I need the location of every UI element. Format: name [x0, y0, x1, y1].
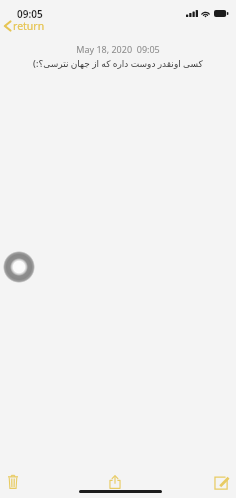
staticText: 09:05: [17, 7, 43, 21]
staticText: کسی اونقدر دوست داره که از جهان نترسی؟:): [10, 57, 226, 69]
button[interactable]: Delete: [1, 469, 25, 493]
staticText: May 18, 2020 09:05: [0, 43, 236, 55]
button[interactable]: return: [2, 19, 47, 33]
button[interactable]: Compose: [210, 470, 234, 494]
staticText: return: [13, 19, 45, 33]
button[interactable]: Share: [103, 470, 127, 494]
